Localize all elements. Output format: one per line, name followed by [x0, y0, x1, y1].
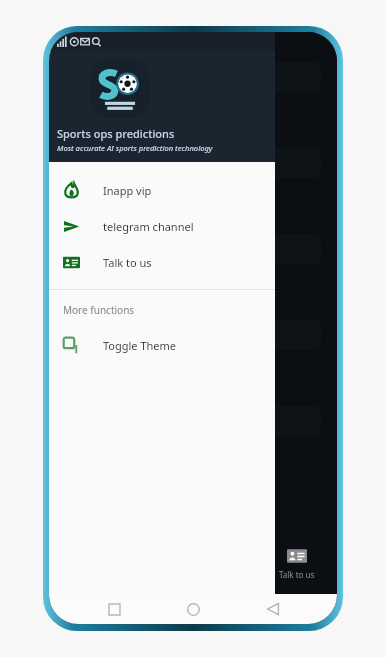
staticText: Talk to us [279, 569, 315, 580]
staticText: Talk to us [103, 255, 152, 270]
staticText: Most accurate AI sports prediction techn… [57, 143, 213, 153]
button[interactable]: Toggle Theme [49, 327, 275, 363]
button[interactable]: Home [178, 594, 208, 624]
staticText: Inapp vip [103, 183, 152, 198]
button[interactable]: Recent apps [99, 594, 129, 624]
button[interactable]: telegram channel [49, 208, 275, 244]
staticText: Toggle Theme [103, 338, 177, 353]
button[interactable]: Talk to us [275, 542, 319, 584]
button[interactable]: Inapp vip [49, 172, 275, 208]
staticText: More functions [63, 303, 135, 317]
staticText: Sports ops predictions [57, 126, 175, 141]
button[interactable]: Back [258, 594, 288, 624]
button[interactable]: Talk to us [49, 244, 275, 280]
other: Talk to us [287, 546, 307, 566]
staticText: telegram channel [103, 219, 194, 234]
